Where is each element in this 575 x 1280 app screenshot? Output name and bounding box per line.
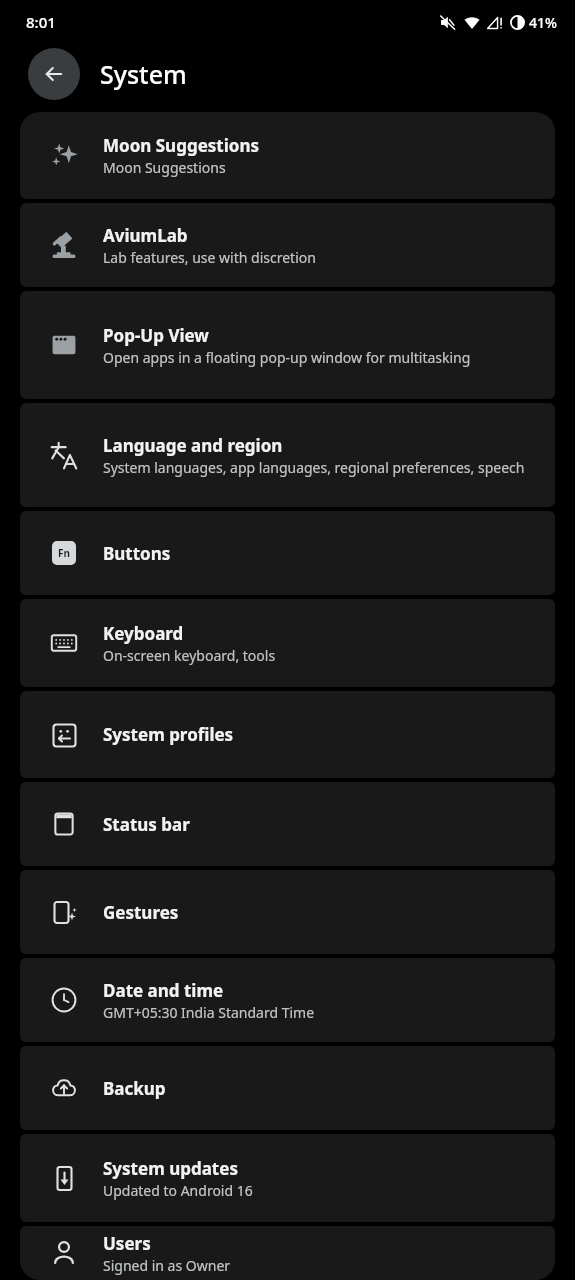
button[interactable]: System updates [20,1134,555,1222]
staticText: AviumLab [103,224,188,247]
button[interactable]: Users [20,1226,555,1280]
staticText: System [100,57,187,91]
staticText: Status bar [103,813,190,836]
staticText: 8:01 [26,12,56,32]
staticText: Moon Suggestions [103,158,226,177]
button[interactable]: Fn [20,511,555,595]
staticText: Backup [103,1077,166,1100]
staticText: Updated to Android 16 [103,1181,253,1200]
staticText: Users [103,1232,151,1255]
staticText: Language and region [103,434,283,457]
staticText: Keyboard [103,622,184,645]
staticText: Lab features, use with discretion [103,248,316,267]
staticText: Buttons [103,542,171,565]
button[interactable]: System profiles [20,691,555,778]
staticText: System languages, app languages, regiona… [103,458,525,477]
button[interactable]: Language and region [20,403,555,507]
staticText: System updates [103,1157,238,1180]
staticText: Pop-Up View [103,324,209,347]
staticText: Signed in as Owner [103,1256,231,1275]
button[interactable]: Status bar [20,782,555,866]
staticText: 41% [529,13,557,32]
button[interactable]: Back [28,48,80,100]
staticText: System profiles [103,723,234,746]
button[interactable]: Keyboard [20,599,555,687]
button[interactable]: Moon Suggestions [20,112,555,199]
button[interactable]: Gestures [20,870,555,954]
staticText: Fn [58,546,70,560]
button[interactable]: Backup [20,1046,555,1130]
staticText: Open apps in a floating pop-up window fo… [103,348,471,367]
staticText: Moon Suggestions [103,134,260,157]
button[interactable]: AviumLab [20,203,555,287]
staticText: Date and time [103,979,224,1002]
staticText: On-screen keyboard, tools [103,646,276,665]
staticText: Gestures [103,901,179,924]
button[interactable]: Date and time [20,958,555,1042]
button[interactable]: Pop-Up View [20,291,555,399]
staticText: GMT+05:30 India Standard Time [103,1003,315,1022]
